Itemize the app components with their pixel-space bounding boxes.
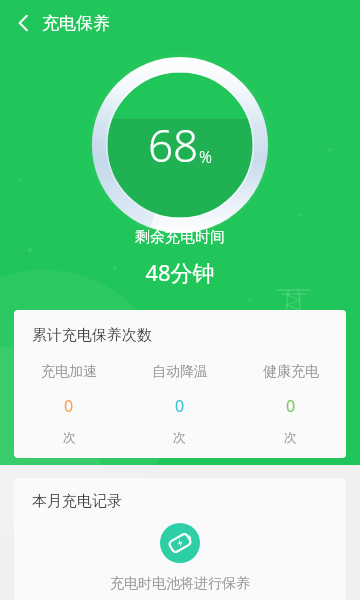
staticText: 68 — [148, 115, 199, 175]
button[interactable]: 自动降温 — [124, 363, 235, 445]
staticText: 48分钟 — [145, 257, 215, 287]
staticText: 0 — [175, 395, 185, 417]
staticText: 健康充电 — [263, 363, 319, 381]
button[interactable]: 累计充电保养次数 — [14, 310, 346, 458]
staticText: % — [199, 146, 212, 168]
staticText: 次 — [173, 429, 186, 445]
staticText: 次 — [284, 429, 297, 445]
button[interactable]: 本月充电记录 — [14, 478, 346, 600]
staticText: 剩余充电时间 — [135, 228, 225, 247]
staticText: 本月充电记录 — [32, 492, 122, 511]
staticText: 充电加速 — [41, 363, 97, 381]
staticText: 充电时电池将进行保养 — [14, 575, 346, 593]
staticText: 0 — [286, 395, 296, 417]
button[interactable]: 健康充电 — [235, 363, 346, 445]
staticText: 自动降温 — [152, 363, 208, 381]
staticText: 充电保养 — [42, 13, 110, 34]
button[interactable]: 充电加速 — [14, 363, 124, 445]
button[interactable]: Back — [6, 5, 42, 41]
staticText: 0 — [64, 395, 74, 417]
staticText: 次 — [63, 429, 76, 445]
staticText: 累计充电保养次数 — [32, 326, 152, 345]
